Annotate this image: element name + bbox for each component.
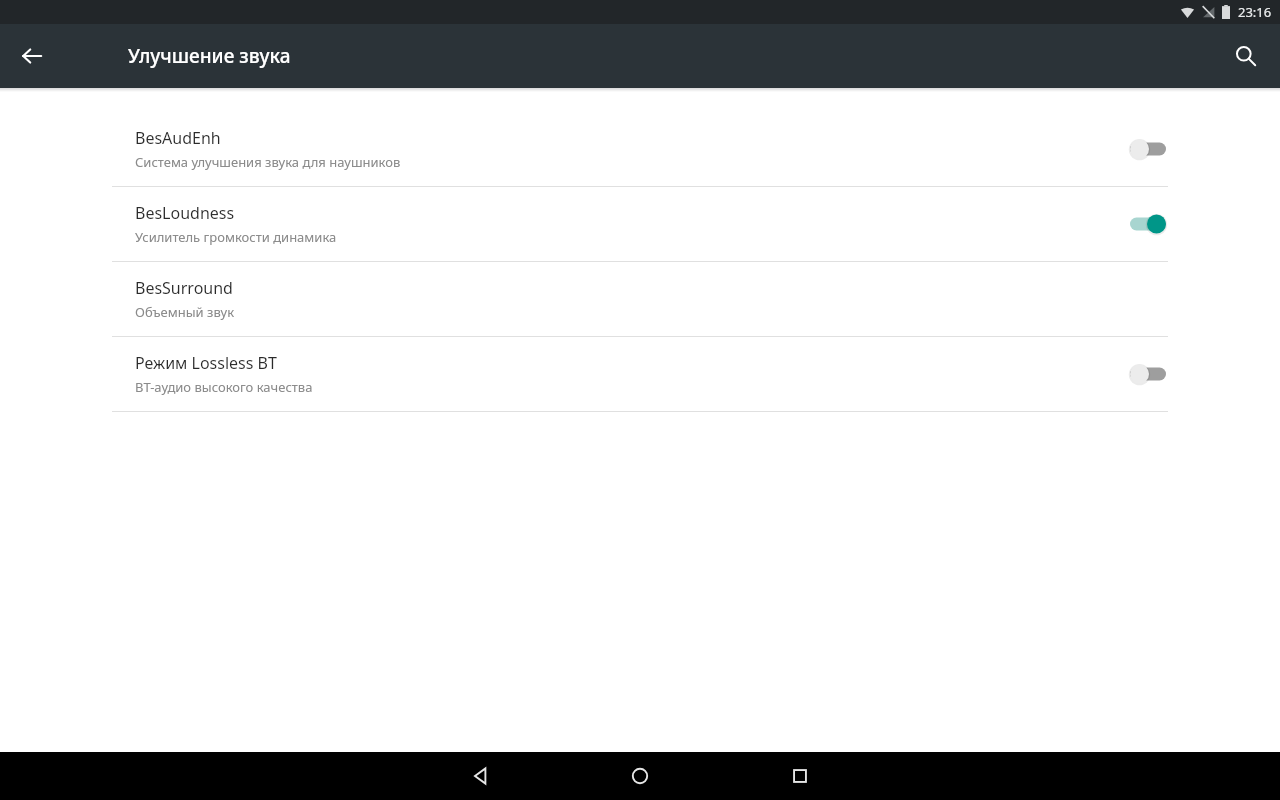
button[interactable]: Режим Lossless BT xyxy=(0,337,1280,411)
staticText: BesAudEnh xyxy=(135,127,221,149)
staticText: 23:16 xyxy=(1238,3,1272,21)
button[interactable]: Recent apps xyxy=(720,752,880,800)
button[interactable]: Back xyxy=(400,752,560,800)
staticText: Улучшение звука xyxy=(128,43,291,69)
button[interactable]: Toggle on xyxy=(1128,210,1168,238)
button[interactable]: Toggle off xyxy=(1128,360,1168,388)
button[interactable]: Home xyxy=(560,752,720,800)
button[interactable]: BesSurround xyxy=(0,262,1280,336)
staticText: BesLoudness xyxy=(135,202,235,224)
staticText: BesSurround xyxy=(135,277,233,299)
button[interactable]: Back xyxy=(12,36,52,76)
button[interactable]: Search xyxy=(1224,34,1268,78)
staticText: Система улучшения звука для наушников xyxy=(135,153,401,171)
button[interactable]: BesLoudness xyxy=(0,187,1280,261)
button[interactable]: Toggle off xyxy=(1128,135,1168,163)
button[interactable]: BesAudEnh xyxy=(0,112,1280,186)
staticText: Объемный звук xyxy=(135,303,235,321)
staticText: BT-аудио высокого качества xyxy=(135,378,313,396)
staticText: Режим Lossless BT xyxy=(135,352,277,374)
staticText: Усилитель громкости динамика xyxy=(135,228,337,246)
